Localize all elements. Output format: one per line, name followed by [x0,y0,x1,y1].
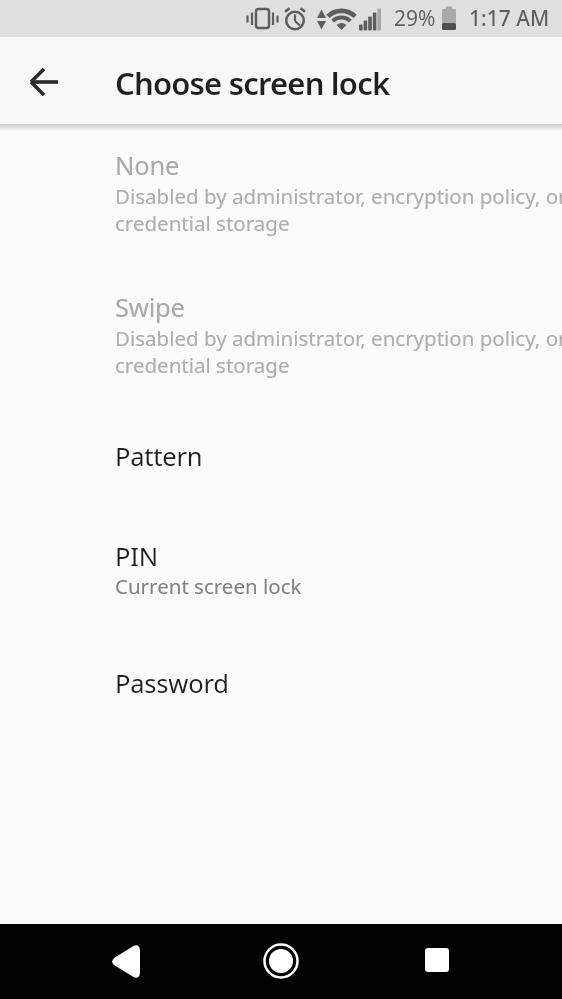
staticText: 1:17 AM [469,4,550,33]
staticText: Choose screen lock [115,62,390,104]
staticText: Swipe [115,290,185,325]
button[interactable] [257,937,305,985]
staticText: credential storage [115,209,290,237]
staticText: Disabled by administrator, encryption po… [115,324,562,352]
button[interactable]: Pattern [0,429,562,504]
staticText: Disabled by administrator, encryption po… [115,182,562,210]
staticText: None [115,148,180,183]
staticText: Pattern [115,439,203,474]
button[interactable]: Password [0,656,562,731]
staticText: 29% [394,4,436,33]
staticText: credential storage [115,351,290,379]
staticText: Password [115,666,229,701]
button[interactable] [101,937,149,985]
button[interactable] [20,58,68,106]
staticText: PIN [115,539,158,574]
button[interactable] [413,937,461,985]
button[interactable]: PIN [0,529,562,633]
button[interactable]: None [0,138,562,250]
button[interactable]: Swipe [0,280,562,392]
staticText: Current screen lock [115,572,302,600]
